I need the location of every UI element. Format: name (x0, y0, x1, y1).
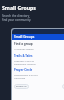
staticText: Downtown campus (14, 62, 36, 65)
staticText: Browse all (16, 85, 27, 88)
button[interactable]: Prayer Circle (14, 68, 64, 79)
staticText: Trails & Tales (14, 54, 33, 58)
staticText: Tuesdays 7:00 PM (14, 59, 34, 62)
button[interactable]: Filters (62, 84, 64, 89)
staticText: Small Groups (2, 4, 36, 11)
button[interactable]: Browse all (14, 84, 29, 89)
staticText: Northside (14, 76, 26, 79)
staticText: Small Groups (14, 35, 35, 39)
staticText: Find a group (14, 42, 33, 46)
staticText: Prayer Circle (14, 68, 33, 72)
staticText: 12 groups nearby (14, 47, 34, 50)
button[interactable]: Trails & Tales (14, 54, 64, 65)
staticText: Search the directory, find your communit… (2, 14, 32, 21)
button[interactable]: Small Groups (12, 34, 64, 40)
staticText: Wednesdays 6:30 PM (14, 73, 38, 76)
